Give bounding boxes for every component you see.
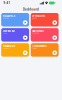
button[interactable]: BALANCE — [1, 13, 29, 26]
staticText: 3 open — [32, 47, 37, 49]
button[interactable]: REWARDS — [1, 43, 29, 57]
button[interactable]: SPENDING — [31, 13, 59, 26]
staticText: REWARDS — [3, 44, 15, 48]
staticText: +8.4% — [3, 32, 7, 34]
staticText: $12,480 — [3, 17, 9, 19]
staticText: INVESTED — [3, 29, 15, 33]
staticText: TRANSFERS — [32, 44, 46, 48]
staticText: $3,204 — [32, 17, 37, 19]
button[interactable]: INVESTED — [1, 28, 29, 42]
staticText: 72% done — [32, 32, 39, 34]
button[interactable]: TRANSFERS — [31, 43, 59, 57]
staticText: Dashboard — [23, 8, 39, 11]
staticText: 9:41 — [4, 1, 11, 5]
staticText: BALANCE — [3, 14, 15, 17]
staticText: SPENDING — [32, 14, 45, 17]
staticText: SAVINGS — [32, 29, 43, 33]
staticText: 1,240 pts — [3, 47, 10, 49]
button[interactable]: SAVINGS — [31, 28, 59, 42]
